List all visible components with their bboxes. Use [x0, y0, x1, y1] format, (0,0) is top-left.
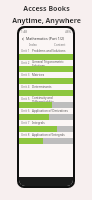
- staticText: General Trigonometric Solutions: [32, 60, 71, 66]
- staticText: Unit 1: [21, 49, 30, 53]
- staticText: Unit 2: [21, 61, 30, 65]
- staticText: Application of Integrals: [32, 133, 65, 137]
- staticText: Unit 8: [21, 133, 30, 137]
- staticText: Unit 7: [21, 121, 30, 125]
- staticText: Content: [54, 43, 66, 47]
- button[interactable]: Back: [21, 37, 25, 41]
- staticText: Continuity and Differentiability: [32, 96, 71, 102]
- button[interactable]: Unit 5: [19, 96, 73, 108]
- button[interactable]: Unit 8: [19, 132, 73, 144]
- button[interactable]: Unit 6: [19, 108, 73, 120]
- staticText: Matrices: [32, 73, 45, 77]
- staticText: Index: [29, 43, 37, 47]
- staticText: Integrals: [32, 121, 45, 125]
- staticText: 46%: [65, 30, 71, 34]
- staticText: Anytime, Anywhere: [12, 16, 81, 26]
- button[interactable]: Unit 1: [19, 48, 73, 60]
- button[interactable]: Unit 4: [19, 84, 73, 96]
- button[interactable]: Unit 2: [19, 60, 73, 72]
- button[interactable]: Index: [19, 42, 46, 48]
- staticText: Access Books: [23, 4, 70, 14]
- staticText: Unit 3: [21, 73, 30, 77]
- button[interactable]: Unit 7: [19, 120, 73, 132]
- staticText: Unit 4: [21, 85, 30, 89]
- staticText: Unit 5: [21, 97, 30, 101]
- staticText: Determinants: [32, 85, 52, 89]
- staticText: Unit 6: [21, 109, 30, 113]
- staticText: Mathematics (Part 1/2): [26, 36, 65, 41]
- button[interactable]: Content: [46, 42, 73, 48]
- staticText: Problems and Solutions: [32, 49, 66, 53]
- button[interactable]: Unit 3: [19, 72, 73, 84]
- staticText: Application of Derivatives: [32, 109, 68, 113]
- staticText: 1:48: [21, 30, 27, 34]
